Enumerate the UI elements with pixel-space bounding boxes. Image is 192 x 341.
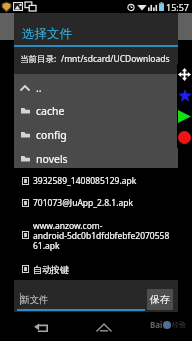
- button[interactable]: Play: [177, 106, 192, 127]
- button[interactable]: Home: [90, 313, 118, 341]
- button[interactable]: novels: [14, 147, 178, 170]
- staticText: 701073@JuApp_2.8.1.apk: [33, 197, 175, 209]
- button[interactable]: Back: [27, 313, 55, 341]
- button[interactable]: Favorite: [177, 85, 192, 106]
- button[interactable]: 自动按键: [14, 261, 178, 277]
- staticText: 15:57: [166, 1, 190, 13]
- staticText: www.anzow.com- android-5dc0b1dfdbfebfe20…: [33, 220, 175, 251]
- button[interactable]: www.anzow.com- android-5dc0b1dfdbfebfe20…: [14, 218, 178, 252]
- button[interactable]: 保存: [147, 289, 173, 310]
- staticText: config: [36, 128, 67, 142]
- staticText: novels: [36, 152, 68, 166]
- staticText: 选择文件: [22, 26, 72, 42]
- staticText: 自动按键: [33, 264, 175, 275]
- button[interactable]: config: [14, 123, 178, 146]
- staticText: cache: [36, 104, 65, 118]
- button[interactable]: 701073@JuApp_2.8.1.apk: [14, 195, 178, 211]
- staticText: 经验: [172, 320, 186, 329]
- staticText: 新文件: [20, 294, 49, 306]
- button[interactable]: Record: [177, 127, 192, 148]
- staticText: 3932589_1408085129.apk: [33, 175, 175, 187]
- staticText: /mnt/sdcard/UCDownloads: [61, 53, 170, 65]
- staticText: ..: [36, 81, 42, 95]
- button[interactable]: ..: [14, 76, 178, 99]
- button[interactable]: 新文件: [17, 282, 145, 310]
- button[interactable]: cache: [14, 99, 178, 122]
- staticText: Bai: [150, 319, 163, 330]
- button[interactable]: 3932589_1408085129.apk: [14, 173, 178, 189]
- staticText: 当前目录:: [20, 53, 57, 65]
- button[interactable]: Move: [177, 64, 192, 85]
- staticText: 保存: [150, 293, 170, 306]
